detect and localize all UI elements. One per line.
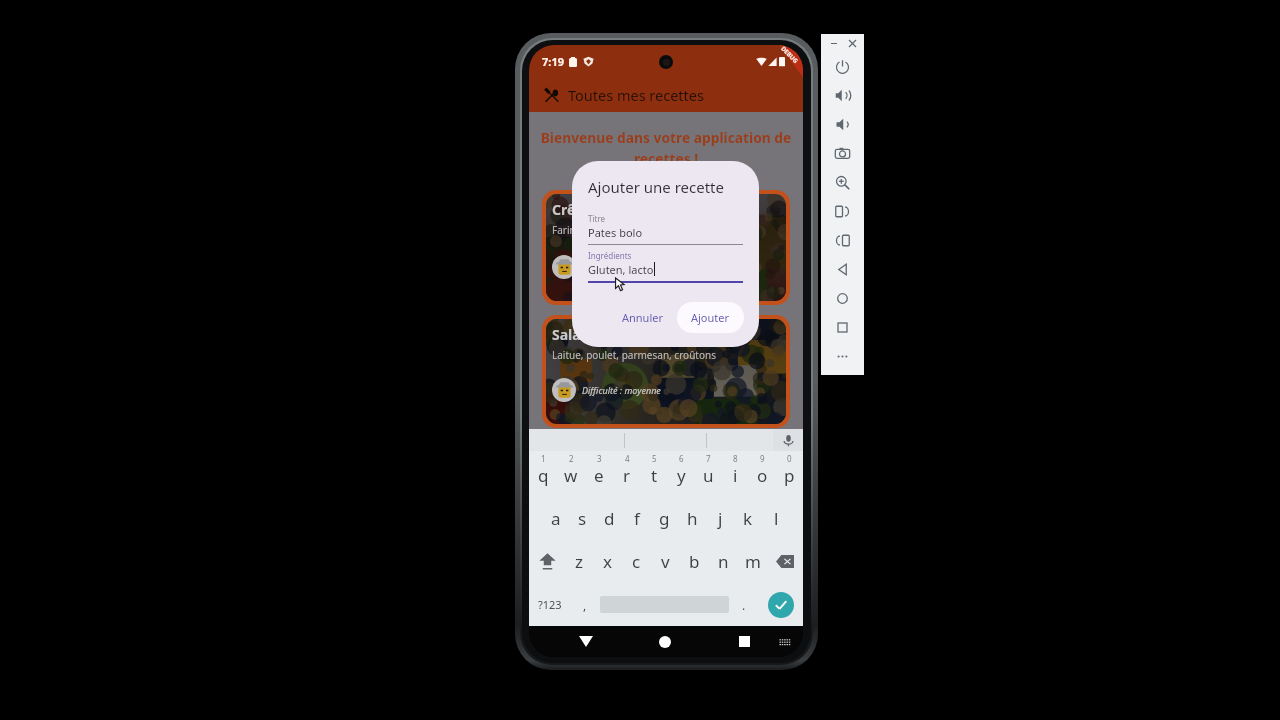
- button[interactable]: z: [565, 540, 593, 583]
- button[interactable]: Annuler: [612, 302, 674, 333]
- button[interactable]: ,: [570, 583, 600, 626]
- button[interactable]: 3: [585, 451, 613, 497]
- staticText: 7: [706, 453, 711, 464]
- button[interactable]: m: [738, 540, 767, 583]
- staticText: j: [718, 507, 723, 530]
- staticText: Titre: [588, 213, 606, 224]
- button[interactable]: .: [729, 583, 759, 626]
- staticText: a: [551, 507, 561, 530]
- staticText: c: [632, 550, 641, 573]
- button[interactable]: Ajouter: [677, 302, 744, 333]
- staticText: b: [689, 550, 700, 573]
- button[interactable]: h: [678, 497, 706, 540]
- button[interactable]: 9: [749, 451, 776, 497]
- staticText: m: [745, 550, 761, 573]
- button[interactable]: 1: [529, 451, 557, 497]
- staticText: Farine, lait, oeufs, sucre: [552, 223, 663, 237]
- button[interactable]: Home: [649, 626, 681, 657]
- button[interactable]: Volume down: [821, 110, 864, 139]
- staticText: q: [538, 464, 549, 487]
- button[interactable]: a: [542, 497, 569, 540]
- staticText: e: [594, 464, 604, 487]
- staticText: Crêpes: [552, 200, 600, 219]
- button[interactable]: d: [596, 497, 623, 540]
- staticText: z: [575, 550, 583, 573]
- button[interactable]: Recipes: [539, 82, 565, 108]
- button[interactable]: Minimize: [825, 34, 843, 52]
- staticText: 2: [569, 453, 574, 464]
- button[interactable]: 4: [613, 451, 641, 497]
- button[interactable]: n: [709, 540, 738, 583]
- button[interactable]: Rotate left: [821, 197, 864, 226]
- button[interactable]: k: [734, 497, 762, 540]
- button[interactable]: Backspace: [767, 540, 803, 583]
- button[interactable]: s: [569, 497, 596, 540]
- staticText: t: [651, 464, 658, 487]
- button[interactable]: Screenshot: [821, 139, 864, 168]
- staticText: Ingrédients: [588, 250, 632, 261]
- staticText: s: [578, 507, 587, 530]
- button[interactable]: v: [651, 540, 680, 583]
- staticText: w: [564, 464, 578, 487]
- staticText: .: [742, 597, 746, 613]
- button[interactable]: 7: [695, 451, 722, 497]
- staticText: Ajouter: [691, 310, 730, 325]
- button[interactable]: 0: [776, 451, 803, 497]
- staticText: ?123: [538, 597, 562, 612]
- staticText: ,: [583, 597, 587, 613]
- staticText: 4: [625, 453, 630, 464]
- button[interactable]: Back: [821, 255, 864, 284]
- button[interactable]: Voice input: [773, 429, 803, 451]
- staticText: Gluten, lacto: [588, 262, 654, 277]
- staticText: v: [661, 550, 670, 573]
- button[interactable]: b: [680, 540, 709, 583]
- button[interactable]: 8: [722, 451, 749, 497]
- button[interactable]: Switch keyboard: [771, 626, 799, 657]
- button[interactable]: g: [650, 497, 678, 540]
- button[interactable]: Rotate right: [821, 226, 864, 255]
- staticText: 5: [652, 453, 657, 464]
- staticText: u: [703, 464, 714, 487]
- button[interactable]: Shift: [529, 540, 565, 583]
- button[interactable]: Back: [570, 626, 602, 657]
- staticText: 3: [597, 453, 602, 464]
- button[interactable]: ?123: [529, 583, 570, 626]
- staticText: d: [604, 507, 615, 530]
- staticText: n: [718, 550, 729, 573]
- staticText: Laitue, poulet, parmesan, croûtons: [552, 348, 716, 362]
- staticText: Toutes mes recettes: [568, 85, 704, 105]
- staticText: r: [623, 464, 631, 487]
- staticText: k: [743, 507, 753, 530]
- staticText: l: [774, 507, 779, 530]
- button[interactable]: x: [593, 540, 622, 583]
- button[interactable]: 5: [641, 451, 668, 497]
- button[interactable]: Volume up: [821, 81, 864, 110]
- staticText: y: [677, 464, 686, 487]
- staticText: i: [733, 464, 738, 487]
- button[interactable]: l: [762, 497, 790, 540]
- button[interactable]: More: [821, 342, 864, 371]
- button[interactable]: Home: [821, 284, 864, 313]
- button[interactable]: 2: [557, 451, 585, 497]
- staticText: Difficulté : facile: [582, 261, 646, 273]
- button[interactable]: Power: [821, 52, 864, 81]
- button[interactable]: Enter: [768, 592, 794, 618]
- button[interactable]: 6: [668, 451, 695, 497]
- button[interactable]: Overview: [821, 313, 864, 342]
- staticText: 0: [787, 453, 792, 464]
- staticText: g: [659, 507, 670, 530]
- button[interactable]: Close: [843, 34, 861, 52]
- button[interactable]: Crêpes: [542, 190, 790, 305]
- staticText: 1: [541, 453, 546, 464]
- button[interactable]: f: [623, 497, 650, 540]
- staticText: Pates bolo: [588, 225, 643, 240]
- staticText: o: [757, 464, 768, 487]
- button[interactable]: Recent apps: [728, 626, 760, 657]
- staticText: x: [603, 550, 612, 573]
- button[interactable]: Salade César: [542, 315, 790, 428]
- staticText: 8: [733, 453, 738, 464]
- button[interactable]: Zoom: [821, 168, 864, 197]
- button[interactable]: c: [622, 540, 651, 583]
- button[interactable]: j: [706, 497, 734, 540]
